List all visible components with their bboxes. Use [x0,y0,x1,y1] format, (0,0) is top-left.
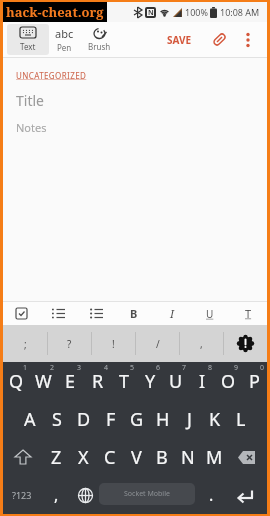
staticText: R [92,369,104,394]
button[interactable]: ; [3,325,47,362]
button[interactable] [3,438,43,476]
button[interactable] [225,476,267,514]
button[interactable]: H [150,400,176,438]
staticText: 1 [23,363,28,373]
button[interactable]: 0 [241,362,267,400]
button[interactable]: B [149,438,175,476]
button[interactable]: B [115,302,153,325]
staticText: Q [9,369,24,394]
staticText: I [170,306,175,321]
staticText: N [181,445,195,470]
staticText: Y [145,369,156,394]
staticText: Pen [57,42,72,53]
staticText: 2 [50,363,55,373]
staticText: J [187,407,192,432]
staticText: 4 [104,363,109,373]
button[interactable] [241,30,255,50]
button[interactable]: X [70,438,97,476]
staticText: , [200,337,203,351]
button[interactable]: ?123 [3,476,41,514]
button[interactable]: K [202,400,228,438]
button[interactable]: SAVE [165,31,194,49]
button[interactable] [71,476,99,514]
button[interactable] [3,302,40,325]
button[interactable]: D [70,400,97,438]
button[interactable]: 7 [163,362,189,400]
staticText: P [249,369,260,394]
button[interactable]: M [201,438,227,476]
button[interactable] [224,325,267,362]
button[interactable] [210,30,229,49]
button[interactable]: T [229,302,267,325]
staticText: O [221,369,236,394]
staticText: 100% [185,6,208,18]
staticText: A [24,407,36,432]
staticText: 3 [77,363,82,373]
button[interactable]: 6 [137,362,163,400]
button[interactable]: F [97,400,124,438]
button[interactable]: 5 [111,362,137,400]
staticText: W [35,369,52,394]
staticText: 7 [182,363,187,373]
button[interactable]: Brush [79,24,119,55]
button[interactable]: I [153,302,191,325]
staticText: C [104,445,116,470]
button[interactable]: 3 [57,362,84,400]
staticText: / [156,337,160,351]
staticText: 8 [208,363,213,373]
button[interactable]: 4 [84,362,111,400]
button[interactable]: S [43,400,70,438]
staticText: G [130,407,144,432]
button[interactable]: L [228,400,254,438]
staticText: ?123 [12,489,32,501]
button[interactable]: Socket Mobile [99,476,197,514]
button[interactable]: N [175,438,201,476]
staticText: 10:08 AM [220,6,260,18]
staticText: H [156,407,170,432]
staticText: B [156,445,168,470]
button[interactable]: ? [48,325,91,362]
staticText: Socket Mobile [124,489,170,499]
button[interactable]: U [191,302,229,325]
button[interactable]: , [180,325,223,362]
button[interactable]: . [197,476,225,514]
button[interactable]: 9 [215,362,241,400]
button[interactable]: UNCATEGORIZED [16,70,87,81]
staticText: M [206,445,223,470]
button[interactable] [40,302,77,325]
button[interactable] [77,302,115,325]
staticText: S [52,407,62,432]
button[interactable]: 2 [30,362,57,400]
staticText: SAVE [167,33,192,47]
staticText: B [130,306,138,321]
staticText: U [206,307,214,321]
staticText: D [77,407,91,432]
staticText: E [65,369,76,394]
staticText: X [78,445,89,470]
button[interactable]: C [97,438,123,476]
button[interactable]: Text [7,24,49,55]
button[interactable]: abc [49,24,79,55]
staticText: I [199,369,206,394]
staticText: Notes [16,120,47,135]
button[interactable]: ! [92,325,135,362]
staticText: abc [55,26,74,41]
button[interactable]: / [136,325,179,362]
button[interactable]: J [176,400,202,438]
staticText: L [236,407,246,432]
button[interactable]: 8 [189,362,215,400]
staticText: 5 [130,363,135,373]
button[interactable]: A [16,400,43,438]
staticText: T [245,306,252,321]
staticText: . [209,484,214,506]
button[interactable]: , [41,476,71,514]
staticText: ! [112,337,115,351]
staticText: T [119,369,130,394]
button[interactable]: Z [43,438,70,476]
button[interactable] [227,438,267,476]
staticText: Brush [88,41,111,52]
button[interactable]: V [123,438,149,476]
button[interactable]: G [124,400,150,438]
staticText: ? [67,337,72,351]
button[interactable]: 1 [3,362,30,400]
